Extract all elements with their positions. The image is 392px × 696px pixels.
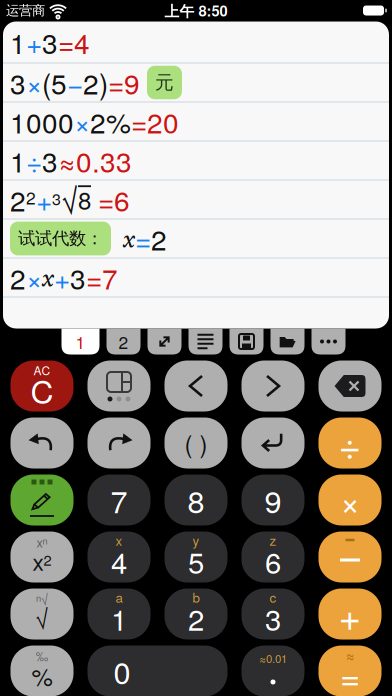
button[interactable]: 删除 [318,360,381,411]
button[interactable]: 清除 [10,360,73,411]
button[interactable]: 开方 [10,588,73,639]
staticText: b [192,587,199,607]
staticText: x [42,264,54,295]
staticText: 运营商 [6,2,45,19]
staticText: 2 [188,597,204,639]
button[interactable]: 保存 [229,328,263,354]
staticText: 6 [265,540,281,582]
staticText: z [269,530,276,550]
staticText: 3√ [52,177,78,222]
staticText: 2% [90,101,131,142]
button[interactable]: 撤销 [10,417,73,468]
staticText: ≈ [345,644,354,665]
staticText: = [135,218,151,259]
button[interactable]: z [241,531,304,582]
staticText: ( [42,62,51,103]
button[interactable]: 7 [87,474,150,525]
staticText: 0.33 [76,140,132,181]
button[interactable]: 第 2 页 [106,328,140,354]
staticText: = [340,650,360,696]
staticText: C [30,367,53,413]
staticText: √ [35,600,49,636]
staticText: 试试代数： [18,228,103,249]
staticText: 8 [187,478,204,522]
button[interactable]: 更多 [311,328,345,354]
button[interactable]: 手写 [10,474,73,525]
button[interactable]: 键盘切换 [87,360,150,411]
button[interactable]: 换行 [241,417,304,468]
staticText: x [115,530,122,550]
staticText: 3 [42,22,58,62]
staticText: 2 [151,218,167,259]
button[interactable]: 试试代数： [10,222,111,255]
button[interactable]: x [87,531,150,582]
button[interactable]: 乘 [318,474,381,525]
staticText: 22 [10,180,36,219]
button[interactable]: 等于 [318,645,381,696]
staticText: 20 [147,101,179,142]
button[interactable]: 全屏 [147,328,181,354]
staticText: 元 [155,71,174,94]
staticText: 1 [75,329,85,354]
button[interactable]: 8 [164,474,227,525]
staticText: 3 [265,597,281,639]
staticText: 3 [10,62,26,103]
staticText: 4 [111,540,127,582]
staticText: ( ) [184,426,207,460]
staticText: = [98,179,114,220]
button[interactable]: a [87,588,150,639]
staticText: ≈0.01 [259,650,287,666]
staticText: 5 [51,62,67,103]
button[interactable]: 右移 [241,360,304,411]
staticText: 3 [70,257,86,298]
staticText: 8 [78,182,91,217]
staticText: = [108,62,124,103]
button[interactable]: 打开 [270,328,304,354]
staticText: + [54,257,70,298]
staticText: 9 [264,478,281,522]
button[interactable]: 百分比 [10,645,73,696]
staticText: 0 [113,649,130,693]
staticText: 4 [74,22,90,62]
button[interactable]: c [241,588,304,639]
button[interactable]: 加 [318,588,381,639]
staticText: 9 [124,62,140,103]
button[interactable]: b [164,588,227,639]
staticText: a [115,587,122,607]
button[interactable]: 列表 [188,328,222,354]
staticText: x2 [32,545,51,577]
staticText: + [36,179,52,220]
staticText: − [67,62,83,103]
button[interactable]: 除 [318,417,381,468]
staticText: 5 [188,540,204,582]
staticText: = [86,257,102,298]
button[interactable]: 第 1 页 [61,328,99,354]
button[interactable]: 重做 [87,417,150,468]
staticText: 1 [111,597,127,639]
button[interactable]: 括号 [164,417,227,468]
staticText: % [31,659,52,693]
staticText: × [74,101,90,142]
button[interactable]: y [164,531,227,582]
staticText: y [192,530,199,550]
staticText: n√ [36,590,48,608]
button[interactable]: 左移 [164,360,227,411]
button[interactable]: 小数点 [241,645,304,696]
button[interactable]: 0 [87,645,227,696]
staticText: ÷ [26,140,42,181]
staticText: 2 [118,329,128,354]
staticText: AC [33,361,50,379]
staticText: c [269,587,276,607]
staticText: = [131,101,147,142]
button[interactable]: 幂 [10,531,73,582]
staticText: 1 [10,22,26,62]
button[interactable]: 减 [318,531,381,582]
staticText: + [26,22,42,62]
staticText: 7 [110,478,127,522]
staticText: ÷ [338,415,361,471]
staticText: 3 [42,140,58,181]
staticText: 7 [102,257,118,298]
button[interactable]: 9 [241,474,304,525]
staticText: 1 [10,140,26,181]
staticText: x [123,225,135,256]
